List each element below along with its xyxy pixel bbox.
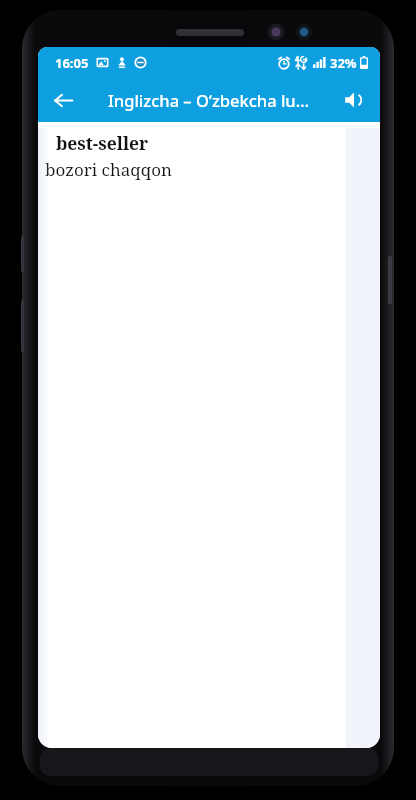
- staticText: bozori chaqqon: [45, 158, 172, 181]
- button[interactable]: best-seller: [38, 122, 380, 748]
- staticText: 32%: [330, 54, 357, 72]
- staticText: 16:05: [55, 54, 89, 72]
- button[interactable]: Pronounce: [335, 81, 373, 119]
- button[interactable]: Back: [44, 81, 82, 119]
- staticText: Inglizcha – O‘zbekcha lu…: [108, 89, 310, 111]
- button[interactable]: Inglizcha – O‘zbekcha lu…: [82, 78, 335, 122]
- staticText: best-seller: [56, 131, 149, 155]
